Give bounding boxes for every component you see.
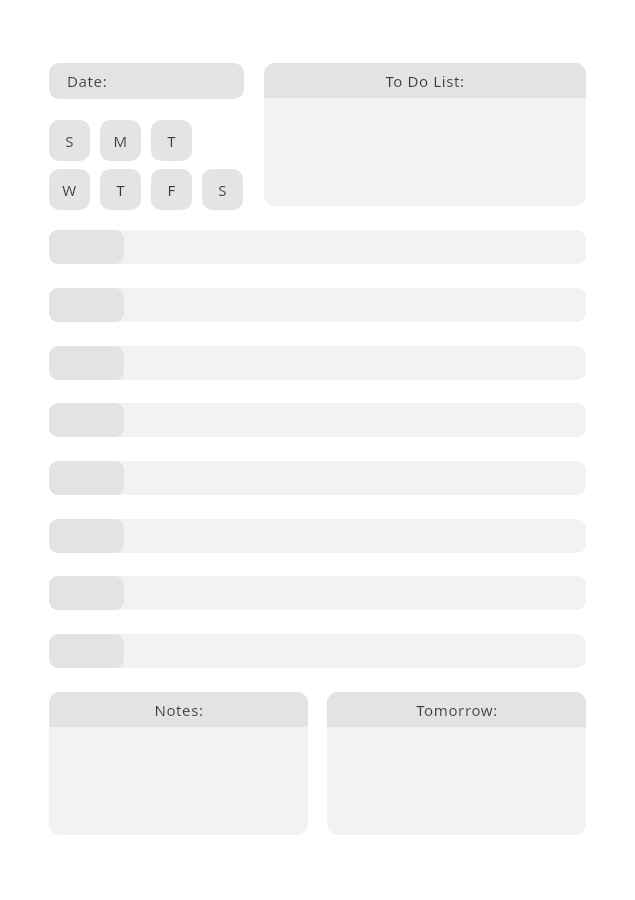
button[interactable]: [49, 634, 586, 668]
button[interactable]: [49, 346, 586, 380]
button[interactable]: T: [151, 120, 192, 161]
button[interactable]: To Do List:: [264, 63, 586, 206]
staticText: W: [62, 180, 77, 200]
staticText: Date:: [67, 71, 108, 91]
button[interactable]: T: [100, 169, 141, 210]
button[interactable]: [49, 461, 586, 495]
button[interactable]: S: [202, 169, 243, 210]
staticText: To Do List:: [385, 71, 465, 91]
button[interactable]: [49, 576, 586, 610]
staticText: S: [218, 180, 227, 200]
button[interactable]: M: [100, 120, 141, 161]
button[interactable]: Date:: [49, 63, 244, 99]
staticText: T: [116, 180, 125, 200]
staticText: T: [167, 131, 176, 151]
button[interactable]: Notes:: [49, 692, 308, 835]
staticText: Tomorrow:: [416, 700, 498, 720]
staticText: M: [113, 131, 128, 151]
staticText: S: [65, 131, 74, 151]
button[interactable]: F: [151, 169, 192, 210]
button[interactable]: W: [49, 169, 90, 210]
staticText: Notes:: [154, 700, 204, 720]
button[interactable]: Tomorrow:: [327, 692, 586, 835]
button[interactable]: [49, 519, 586, 553]
staticText: F: [167, 180, 176, 200]
button[interactable]: S: [49, 120, 90, 161]
button[interactable]: [49, 403, 586, 437]
button[interactable]: [49, 230, 586, 264]
button[interactable]: [49, 288, 586, 322]
